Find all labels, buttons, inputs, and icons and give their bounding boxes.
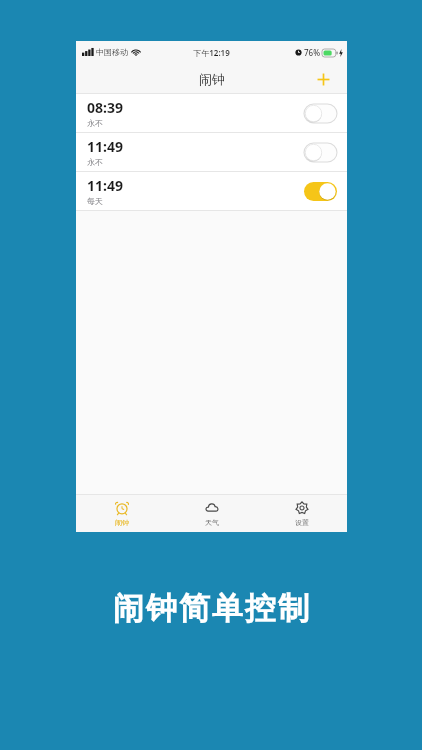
staticText: 设置 bbox=[295, 518, 309, 527]
button[interactable]: 08:39 bbox=[76, 94, 347, 132]
staticText: 76% bbox=[304, 47, 320, 58]
button[interactable]: 闹钟 bbox=[76, 495, 167, 532]
staticText: 下午12:19 bbox=[193, 47, 230, 58]
button[interactable]: Alarm off bbox=[304, 143, 337, 162]
button[interactable]: Alarm on bbox=[304, 182, 337, 201]
staticText: 天气 bbox=[205, 518, 219, 527]
staticText: 每天 bbox=[87, 196, 103, 206]
button[interactable]: 11:49 bbox=[76, 172, 347, 210]
staticText: 闹钟简单控制 bbox=[112, 589, 310, 628]
button[interactable]: Alarm off bbox=[304, 104, 337, 123]
staticText: 11:49 bbox=[87, 176, 123, 195]
staticText: 中国移动 bbox=[96, 47, 128, 57]
button[interactable]: 11:49 bbox=[76, 133, 347, 171]
staticText: 永不 bbox=[87, 157, 103, 167]
staticText: 闹钟 bbox=[115, 518, 129, 527]
staticText: 08:39 bbox=[87, 98, 123, 117]
staticText: 永不 bbox=[87, 118, 103, 128]
button[interactable]: 设置 bbox=[257, 495, 347, 532]
button[interactable]: Add alarm bbox=[311, 67, 335, 91]
button[interactable]: 天气 bbox=[167, 495, 257, 532]
staticText: 11:49 bbox=[87, 137, 123, 156]
staticText: 闹钟 bbox=[199, 71, 225, 87]
